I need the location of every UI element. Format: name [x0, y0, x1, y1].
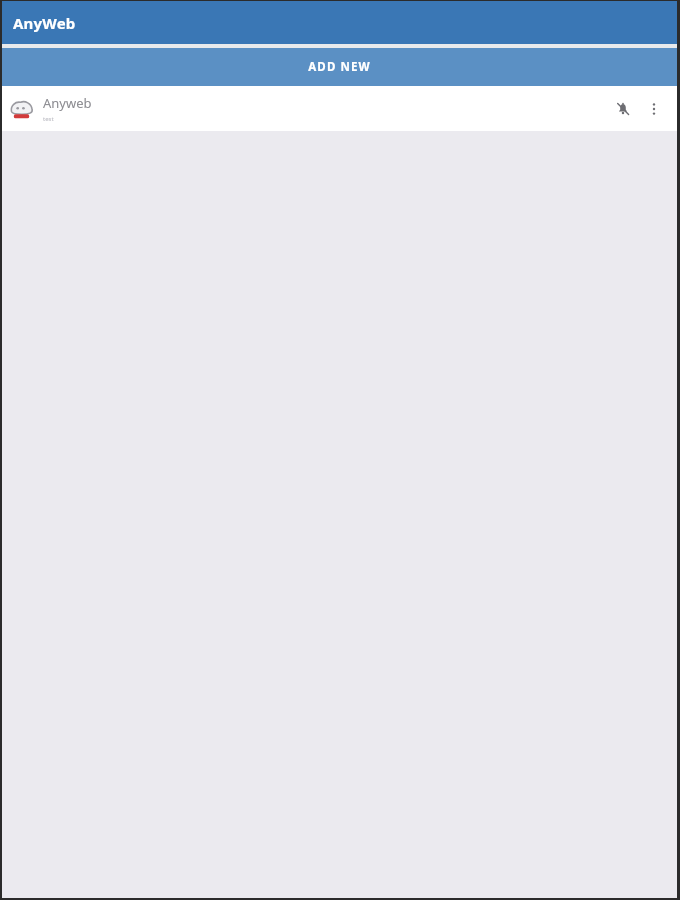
staticText: AnyWeb: [13, 13, 76, 33]
button[interactable]: ADD NEW: [2, 48, 677, 86]
staticText: test: [43, 115, 54, 123]
staticText: ADD NEW: [308, 59, 371, 75]
button[interactable]: Notifications off: [608, 94, 638, 124]
button[interactable]: More options: [639, 94, 669, 124]
staticText: Anyweb: [43, 94, 92, 112]
button[interactable]: Anyweb: [2, 86, 677, 131]
